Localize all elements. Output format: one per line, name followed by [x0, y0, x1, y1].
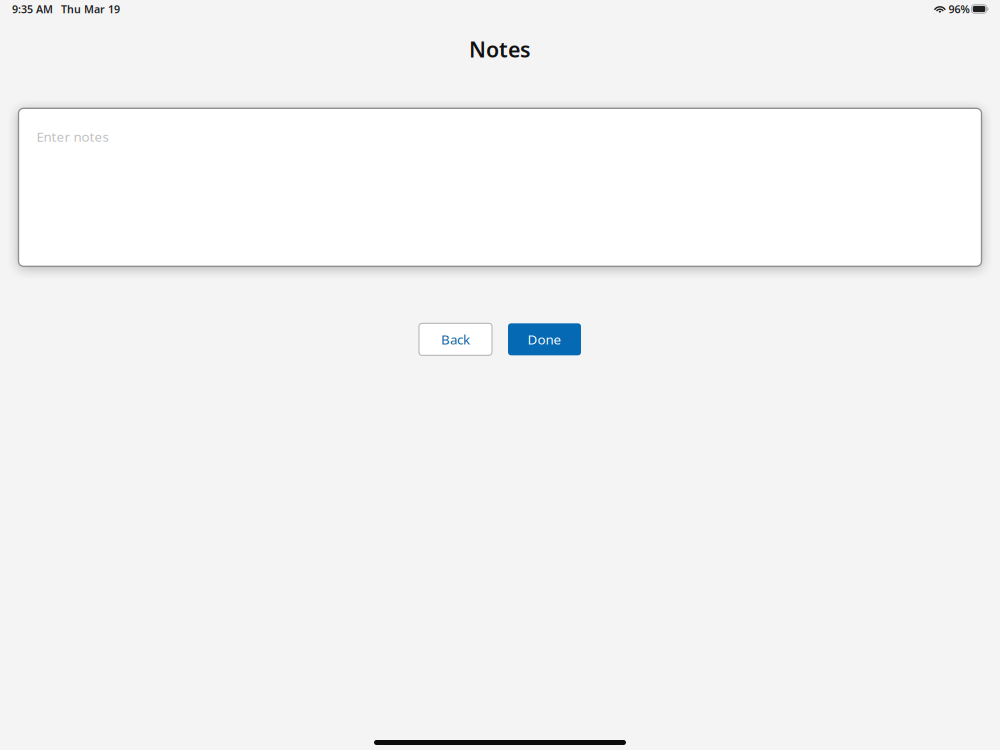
- button[interactable]: Enter notes: [18, 108, 981, 266]
- button[interactable]: Back: [419, 323, 492, 355]
- staticText: Enter notes: [36, 128, 108, 145]
- staticText: Back: [441, 330, 470, 348]
- staticText: Done: [527, 330, 561, 348]
- button[interactable]: Done: [508, 323, 581, 355]
- staticText: 96%: [948, 2, 969, 16]
- staticText: 9:35 AM: [12, 2, 53, 16]
- staticText: Thu Mar 19: [61, 2, 120, 16]
- staticText: Notes: [469, 35, 531, 63]
